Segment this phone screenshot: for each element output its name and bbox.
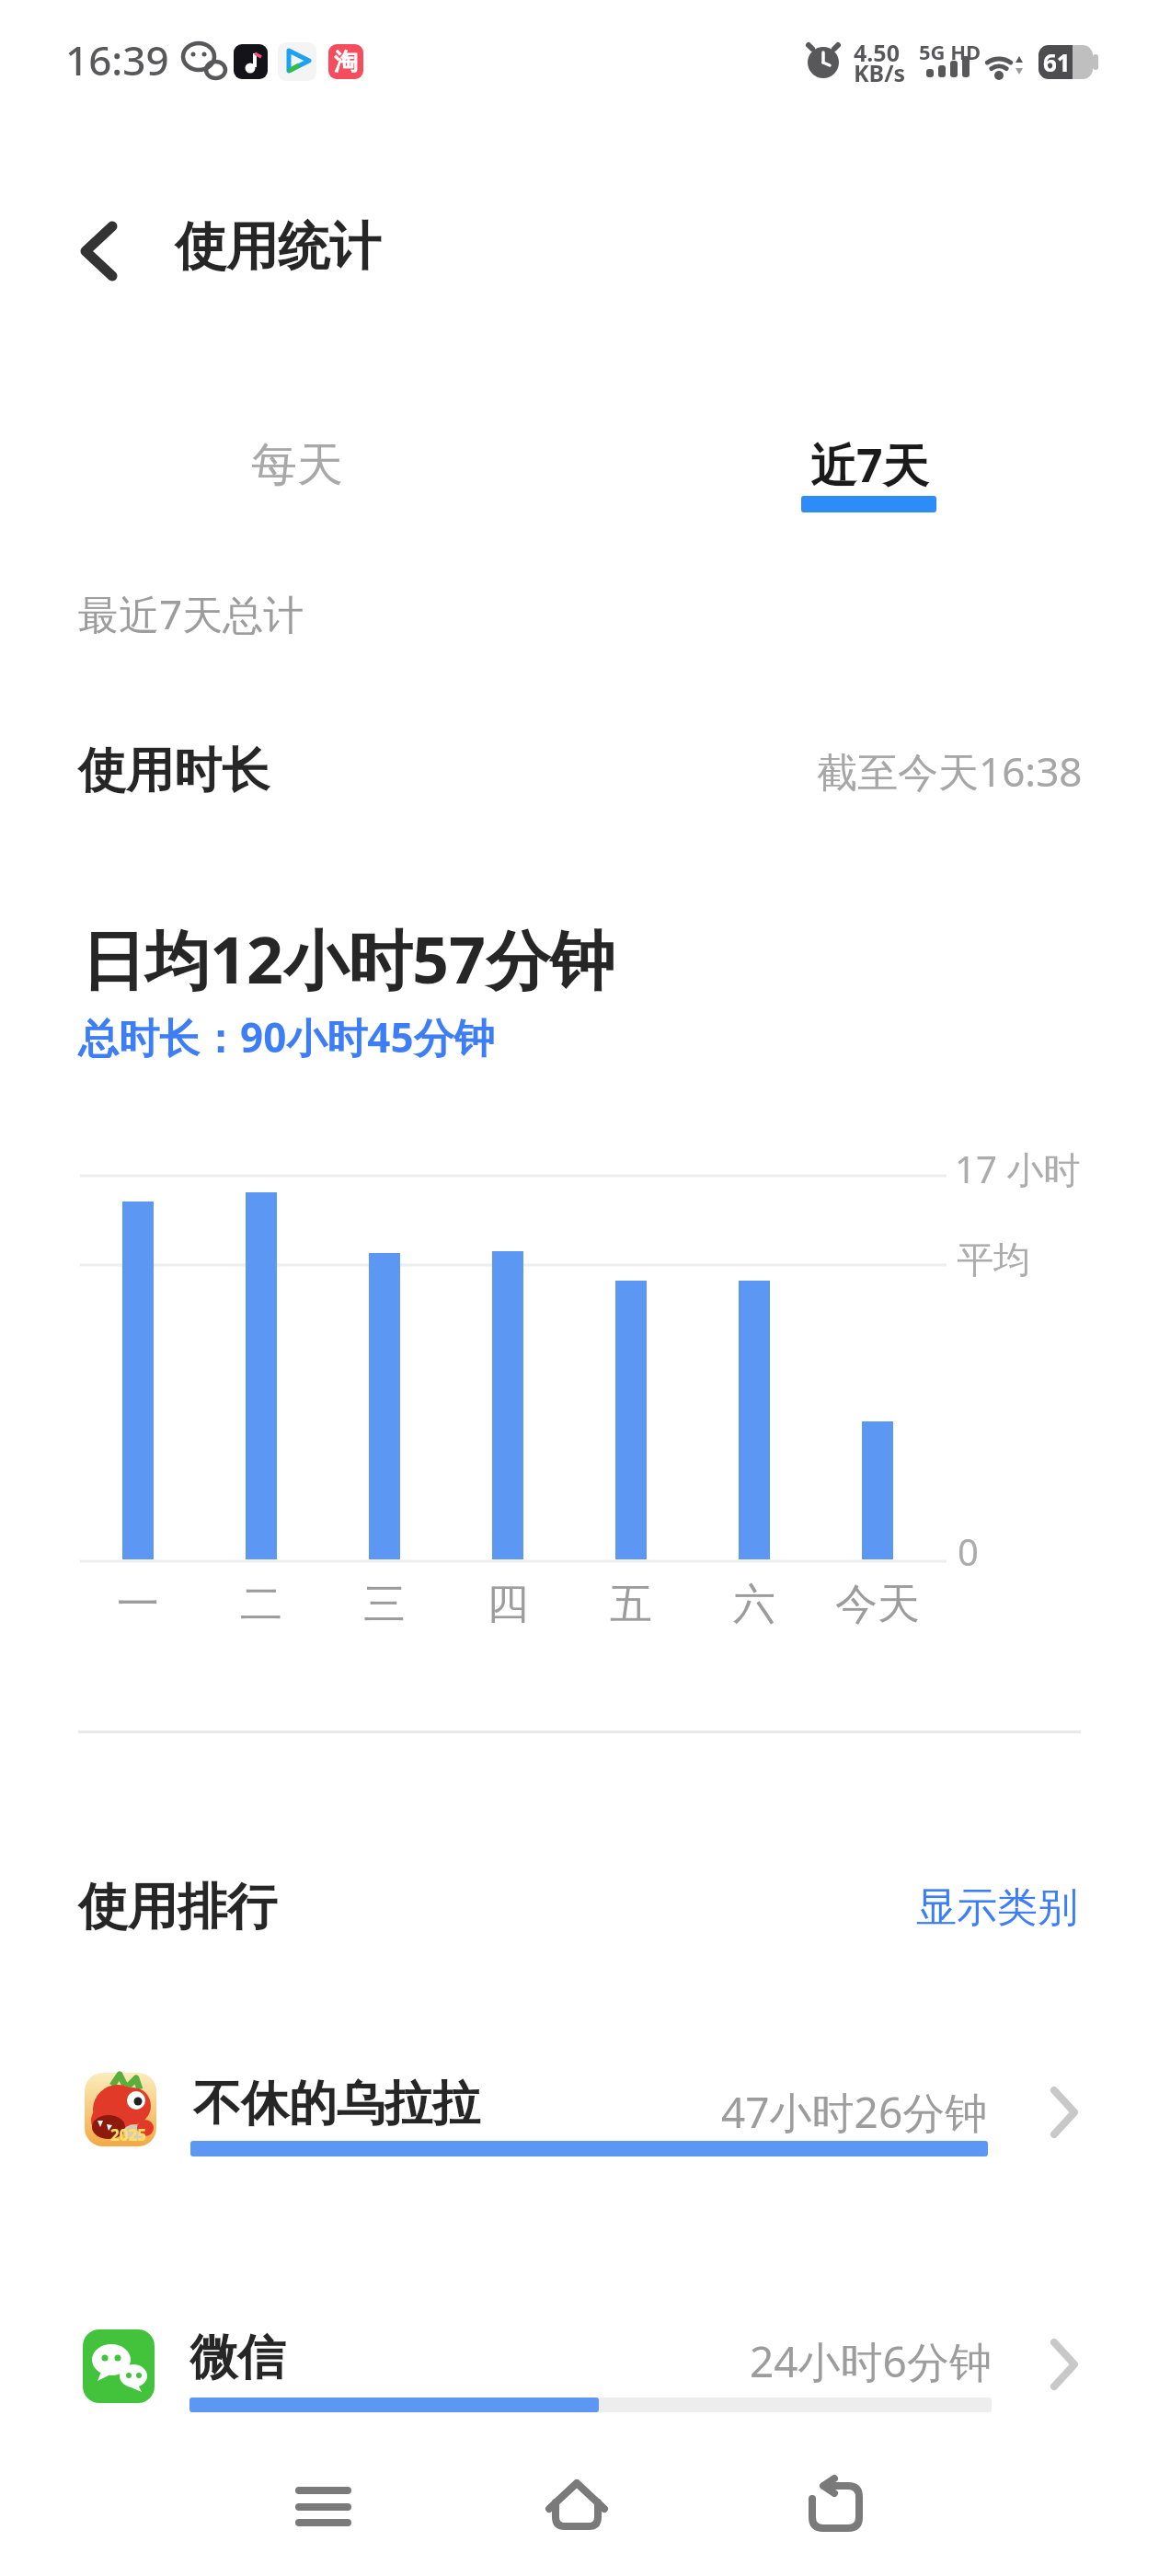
staticText: 今天: [835, 1578, 920, 1631]
staticText: 17 小时: [955, 1144, 1081, 1194]
staticText: 每天: [251, 436, 343, 494]
staticText: 最近7天总计: [78, 586, 304, 641]
staticText: 使用排行: [78, 1876, 277, 1938]
staticText: 不休的乌拉拉: [193, 2074, 480, 2134]
staticText: 61: [1043, 46, 1071, 78]
staticText: 一: [117, 1578, 159, 1631]
staticText: 0: [958, 1526, 979, 1576]
staticText: 日均12小时57分钟: [81, 914, 615, 1003]
button[interactable]: 显示类别: [618, 1867, 1078, 1948]
button[interactable]: [55, 2052, 1104, 2171]
staticText: 平均: [957, 1236, 1030, 1282]
staticText: 5G HD: [919, 38, 981, 65]
button[interactable]: 每天: [233, 419, 361, 511]
button[interactable]: [777, 2456, 906, 2558]
staticText: 二: [240, 1578, 282, 1631]
staticText: 近7天: [810, 433, 929, 496]
button[interactable]: 近7天: [791, 423, 947, 524]
button[interactable]: [515, 2456, 644, 2558]
staticText: 4.50: [854, 37, 900, 68]
staticText: 五: [610, 1578, 652, 1631]
staticText: 显示类别: [916, 1882, 1078, 1933]
staticText: 2025: [110, 2124, 146, 2145]
staticText: 四: [487, 1578, 529, 1631]
staticText: 47小时26分钟: [721, 2083, 988, 2141]
staticText: 16:39: [65, 32, 169, 87]
staticText: 截至今天16:38: [817, 743, 1083, 799]
staticText: 六: [733, 1578, 775, 1631]
staticText: 淘: [334, 47, 358, 77]
staticText: 24小时6分钟: [750, 2332, 992, 2390]
button[interactable]: [258, 2456, 386, 2558]
staticText: 三: [363, 1578, 406, 1631]
button[interactable]: [55, 2309, 1104, 2429]
staticText: KB/s: [854, 57, 906, 88]
staticText: 使用时长: [78, 741, 270, 801]
staticText: 使用统计: [175, 214, 381, 280]
button[interactable]: [64, 221, 129, 282]
staticText: 总时长：90小时45分钟: [78, 1009, 495, 1064]
staticText: 微信: [189, 2328, 285, 2388]
